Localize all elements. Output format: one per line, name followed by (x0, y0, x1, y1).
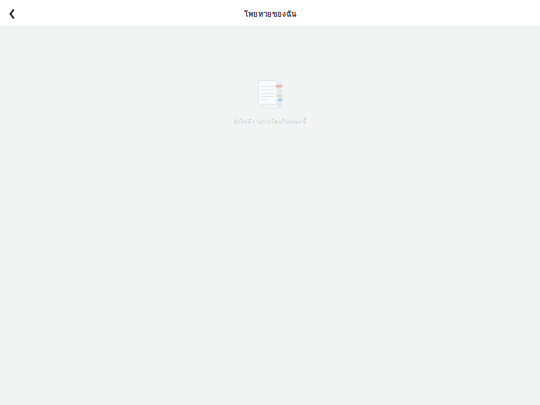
button[interactable]: Back (0, 0, 22, 26)
staticText: โพยหวยของฉัน (244, 8, 296, 20)
staticText: ยังไม่มีรายการโพยในขณะนี้ (234, 117, 306, 126)
